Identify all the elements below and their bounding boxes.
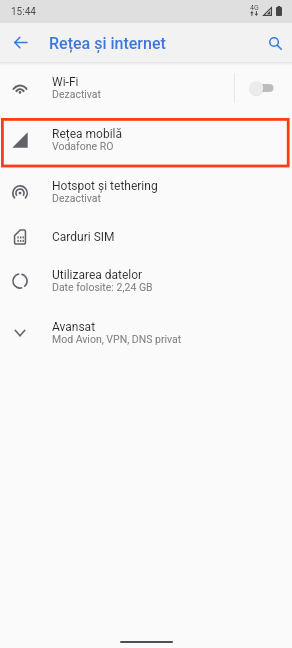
staticText: Rețea și internet	[49, 34, 166, 53]
staticText: Hotspot și tethering	[52, 179, 158, 193]
staticText: Dezactivat	[52, 88, 102, 100]
button[interactable]: Comutare Wi-Fi	[234, 62, 292, 114]
staticText: Mod Avion, VPN, DNS privat	[52, 333, 182, 345]
button[interactable]: Utilizarea datelor	[0, 255, 292, 307]
button[interactable]: Rețea mobilă	[0, 114, 292, 166]
button[interactable]: Avansat	[0, 307, 292, 359]
staticText: Wi-Fi	[52, 75, 79, 89]
staticText: Dezactivat	[52, 192, 102, 204]
staticText: Date folosite: 2,24 GB	[52, 281, 153, 293]
staticText: Avansat	[52, 320, 96, 334]
staticText: Carduri SIM	[52, 230, 115, 244]
staticText: 15:44	[11, 6, 36, 18]
button[interactable]: Wi-Fi	[0, 62, 292, 114]
button[interactable]: Hotspot și tethering	[0, 166, 292, 218]
staticText: Utilizarea datelor	[52, 268, 143, 282]
staticText: 4G	[250, 4, 259, 12]
staticText: Vodafone RO	[52, 140, 114, 152]
button[interactable]: Înapoi	[6, 28, 35, 57]
button[interactable]: Căutare	[260, 28, 290, 58]
staticText: Rețea mobilă	[52, 127, 123, 141]
button[interactable]: Carduri SIM	[0, 218, 292, 256]
